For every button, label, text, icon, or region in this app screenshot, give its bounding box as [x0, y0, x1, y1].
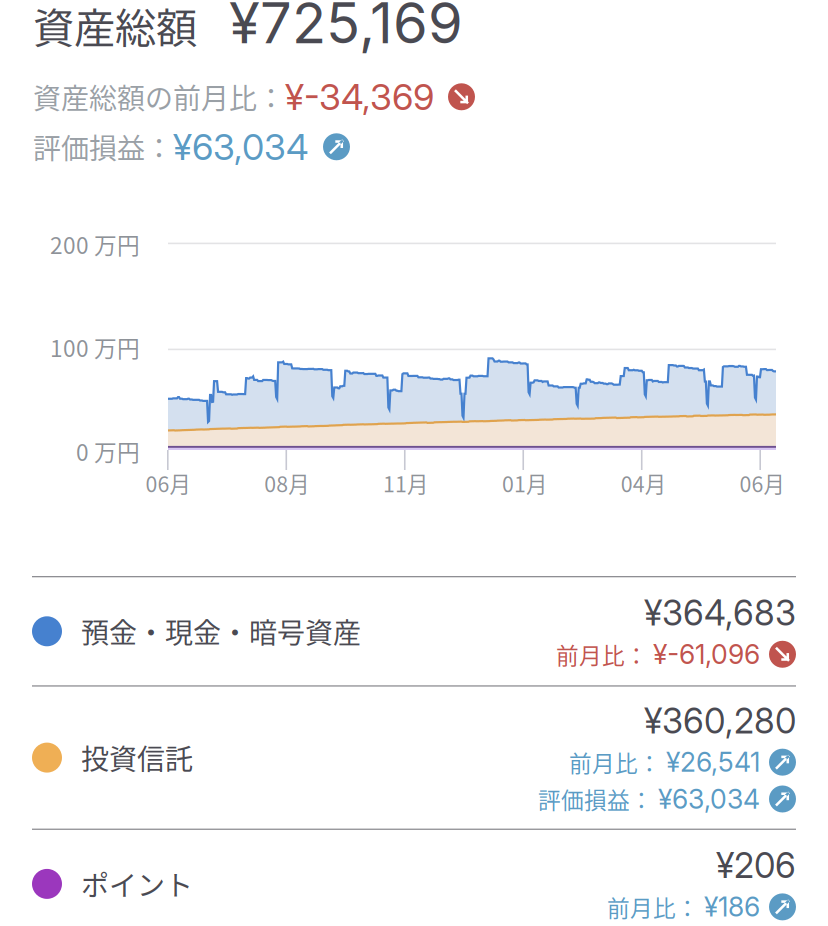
button[interactable]: ポイント — [0, 830, 828, 926]
staticText: ¥206 — [716, 844, 796, 886]
staticText: 0 万円 — [76, 435, 140, 467]
staticText: 04月 — [621, 468, 666, 498]
staticText: 資産総額 — [33, 0, 197, 55]
staticText: ¥364,683 — [644, 592, 796, 634]
staticText: 08月 — [264, 468, 309, 498]
staticText: ¥-61,096 — [653, 638, 760, 670]
staticText: ¥360,280 — [644, 700, 796, 742]
staticText: ¥26,541 — [666, 746, 760, 778]
staticText: 前月比： — [569, 746, 666, 779]
staticText: ¥725,169 — [229, 0, 463, 57]
staticText: 11月 — [383, 468, 428, 498]
staticText: 06月 — [739, 468, 784, 498]
button[interactable]: 預金・現金・暗号資産 — [0, 577, 828, 685]
staticText: ポイント — [81, 864, 193, 904]
staticText: 前月比： — [607, 890, 704, 923]
staticText: ¥186 — [704, 891, 760, 923]
staticText: 100 万円 — [50, 331, 140, 363]
staticText: 200 万円 — [50, 228, 140, 260]
staticText: 06月 — [145, 468, 190, 498]
staticText: 投資信託 — [81, 737, 193, 778]
staticText: 資産総額の前月比： — [33, 76, 285, 117]
staticText: 評価損益： — [538, 783, 658, 815]
staticText: 前月比： — [556, 638, 653, 671]
staticText: ¥63,034 — [173, 125, 309, 169]
staticText: 預金・現金・暗号資産 — [81, 611, 361, 651]
staticText: ¥-34,369 — [285, 75, 434, 119]
staticText: 評価損益： — [33, 126, 173, 167]
button[interactable]: 投資信託 — [0, 687, 828, 829]
staticText: ¥63,034 — [658, 783, 760, 815]
staticText: 01月 — [502, 468, 547, 498]
